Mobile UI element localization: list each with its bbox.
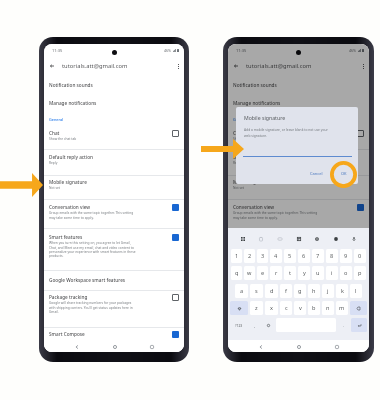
button[interactable]: z [250, 301, 263, 315]
button[interactable]: Home [293, 341, 304, 352]
staticText: Default reply action [49, 154, 93, 160]
button[interactable]: u [312, 266, 324, 280]
button[interactable]: 5 [284, 249, 296, 263]
button[interactable]: Mobile signature [228, 179, 369, 190]
button[interactable]: clip [257, 235, 265, 243]
button[interactable]: 2 [244, 249, 255, 263]
button[interactable]: n [322, 301, 334, 315]
button[interactable]: Default reply action [228, 154, 369, 165]
button[interactable]: Package tracking [44, 294, 184, 313]
button[interactable]: Conversation view [228, 204, 369, 219]
button[interactable]: 3 [257, 249, 268, 263]
button[interactable]: Cancel [308, 169, 325, 178]
button[interactable]: q [231, 266, 242, 280]
button[interactable]: 9 [340, 249, 352, 263]
button[interactable]: Chat [356, 129, 365, 138]
button[interactable]: c [280, 301, 292, 315]
staticText: n [326, 304, 330, 312]
button[interactable]: 4 [270, 249, 282, 263]
button[interactable]: settings [313, 235, 321, 243]
button[interactable]: Manage notifications [44, 100, 184, 106]
button[interactable]: Conversation view [356, 203, 365, 212]
button[interactable]: 8 [326, 249, 338, 263]
button[interactable]: Back [71, 341, 82, 352]
button[interactable]: General [44, 117, 184, 122]
button[interactable]: Chat [44, 130, 184, 141]
button[interactable]: Smart features [44, 234, 184, 257]
button[interactable]: f [280, 284, 292, 298]
button[interactable]: Smart Compose [171, 330, 180, 339]
button[interactable]: Emoji [263, 318, 274, 332]
button[interactable]: mic [350, 235, 358, 243]
button[interactable]: Conversation view [171, 203, 180, 212]
button[interactable]: Package tracking [228, 294, 369, 313]
button[interactable]: Google Workspace smart features [44, 277, 184, 283]
button[interactable]: 6 [298, 249, 310, 263]
button[interactable]: Comma [249, 318, 261, 332]
button[interactable]: m [336, 301, 348, 315]
button[interactable]: 7 [312, 249, 324, 263]
button[interactable]: Chat [171, 129, 180, 138]
button[interactable]: Smart Compose [356, 330, 365, 339]
button[interactable]: Manage notifications [228, 100, 369, 106]
button[interactable]: Google Workspace smart features [228, 277, 369, 283]
button[interactable]: Home [109, 341, 120, 352]
button[interactable]: Back [255, 341, 266, 352]
button[interactable]: 0 [354, 249, 366, 263]
button[interactable]: Default reply action [44, 154, 184, 165]
button[interactable]: Conversation view [44, 204, 184, 219]
button[interactable]: h [308, 284, 320, 298]
button[interactable]: Recent apps [146, 341, 157, 352]
button[interactable]: r [270, 266, 282, 280]
button[interactable]: Notification sounds [44, 82, 184, 88]
button[interactable]: Package tracking [171, 293, 180, 302]
button[interactable]: Shift [230, 301, 248, 315]
button[interactable]: Smart features [171, 233, 180, 242]
button[interactable]: y [298, 266, 310, 280]
button[interactable]: General [228, 117, 369, 122]
button[interactable]: More options [173, 61, 183, 71]
button[interactable]: OK [339, 169, 349, 178]
button[interactable]: More options [358, 61, 368, 71]
button[interactable]: Smart features [228, 234, 369, 257]
button[interactable]: Enter [351, 318, 367, 332]
button[interactable]: d [265, 284, 278, 298]
button[interactable]: s [250, 284, 263, 298]
button[interactable]: Symbols [230, 318, 247, 332]
button[interactable]: Chat [228, 130, 369, 141]
button[interactable]: t [284, 266, 296, 280]
button[interactable]: a [235, 284, 248, 298]
button[interactable]: Package tracking [356, 293, 365, 302]
button[interactable]: x [265, 301, 278, 315]
button[interactable]: v [294, 301, 306, 315]
button[interactable]: p [354, 266, 366, 280]
staticText: , [254, 323, 256, 328]
button[interactable]: sticker [295, 235, 303, 243]
button[interactable]: Notification sounds [228, 82, 369, 88]
button[interactable]: Backspace [350, 301, 367, 315]
button[interactable]: w [244, 266, 255, 280]
button[interactable]: palette [332, 235, 340, 243]
button[interactable]: Smart Compose [44, 331, 184, 340]
button[interactable]: e [257, 266, 268, 280]
button[interactable]: b [308, 301, 320, 315]
button[interactable]: l [350, 284, 362, 298]
button[interactable]: grid [239, 235, 247, 243]
button[interactable]: Back [46, 60, 57, 71]
button[interactable]: Back [230, 60, 241, 71]
button[interactable]: Smart Compose [228, 331, 369, 340]
button[interactable]: k [336, 284, 348, 298]
button[interactable]: o [340, 266, 352, 280]
button[interactable]: Recent apps [331, 341, 342, 352]
button[interactable]: 1 [231, 249, 242, 263]
button[interactable]: i [326, 266, 338, 280]
button[interactable]: j [322, 284, 334, 298]
button[interactable]: gif [276, 235, 284, 243]
button[interactable]: Mobile signature [44, 179, 184, 190]
staticText: r [275, 269, 278, 277]
button[interactable]: g [294, 284, 306, 298]
